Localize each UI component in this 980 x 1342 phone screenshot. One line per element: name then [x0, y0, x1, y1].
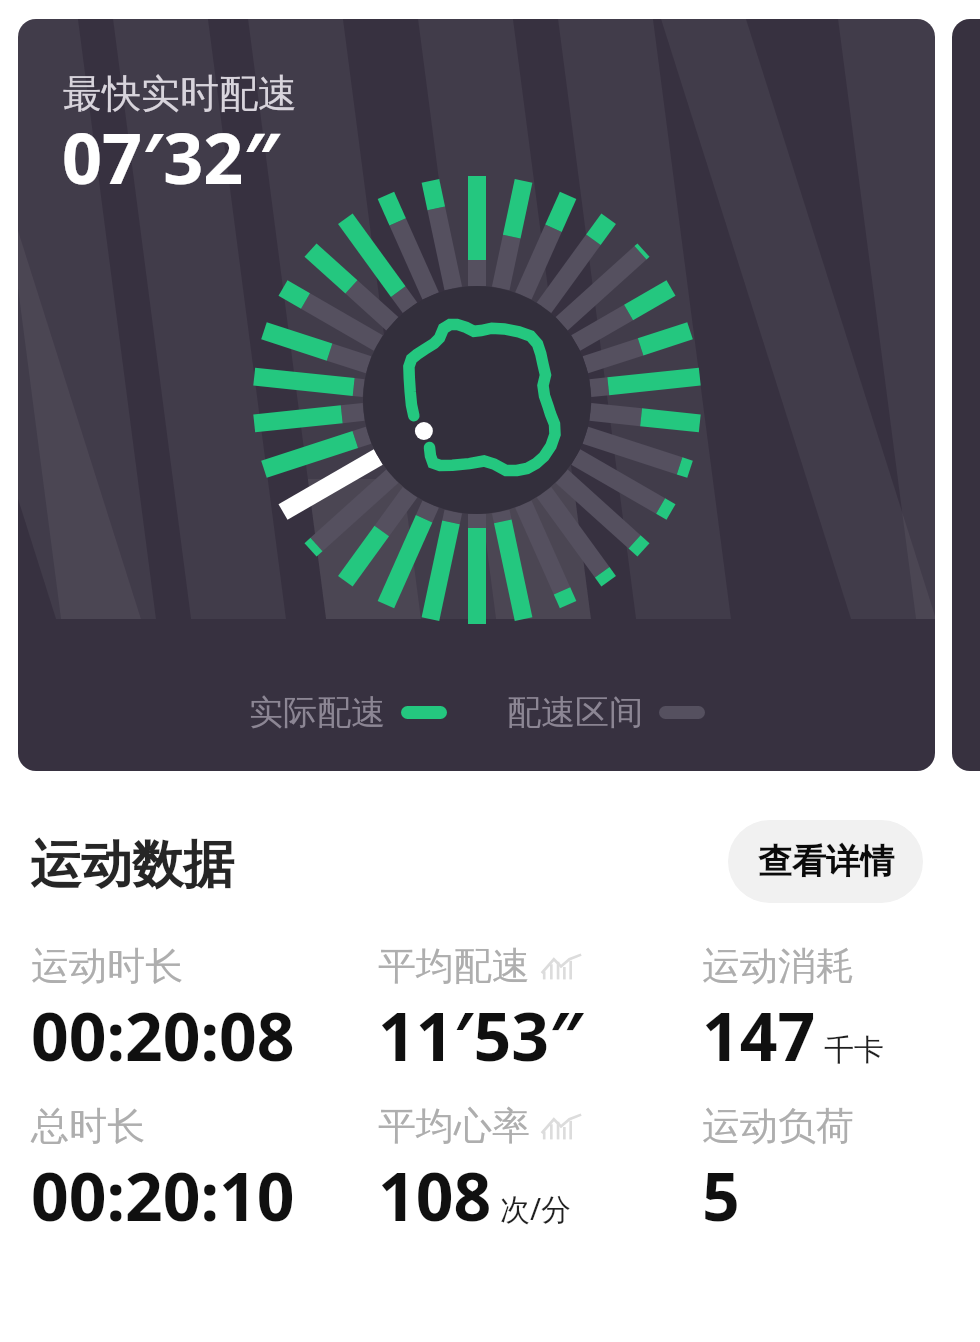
staticText: 00:20:10 [31, 1150, 295, 1240]
staticText: 次/分 [500, 1188, 572, 1229]
staticText: 实际配速 [249, 691, 385, 734]
staticText: 千卡 [824, 1031, 884, 1069]
staticText: 147 [702, 990, 816, 1080]
staticText: 运动数据 [30, 833, 234, 897]
button[interactable] [952, 19, 980, 771]
staticText: 最快实时配速 [63, 69, 297, 118]
staticText: 查看详情 [758, 840, 894, 883]
staticText: 平均心率 [378, 1102, 530, 1150]
staticText: 运动消耗 [702, 942, 854, 990]
staticText: 运动负荷 [702, 1102, 854, 1150]
staticText: 配速区间 [507, 691, 643, 734]
staticText: 5 [702, 1150, 740, 1240]
button[interactable]: 查看详情 [728, 820, 923, 903]
staticText: 108 [378, 1150, 492, 1240]
staticText: 平均配速 [378, 942, 530, 990]
staticText: 07′32″ [62, 109, 281, 204]
staticText: 总时长 [31, 1102, 145, 1150]
button[interactable]: 最快实时配速 [18, 19, 935, 771]
staticText: 11′53″ [378, 990, 584, 1080]
staticText: 运动时长 [31, 942, 183, 990]
staticText: 00:20:08 [31, 990, 295, 1080]
